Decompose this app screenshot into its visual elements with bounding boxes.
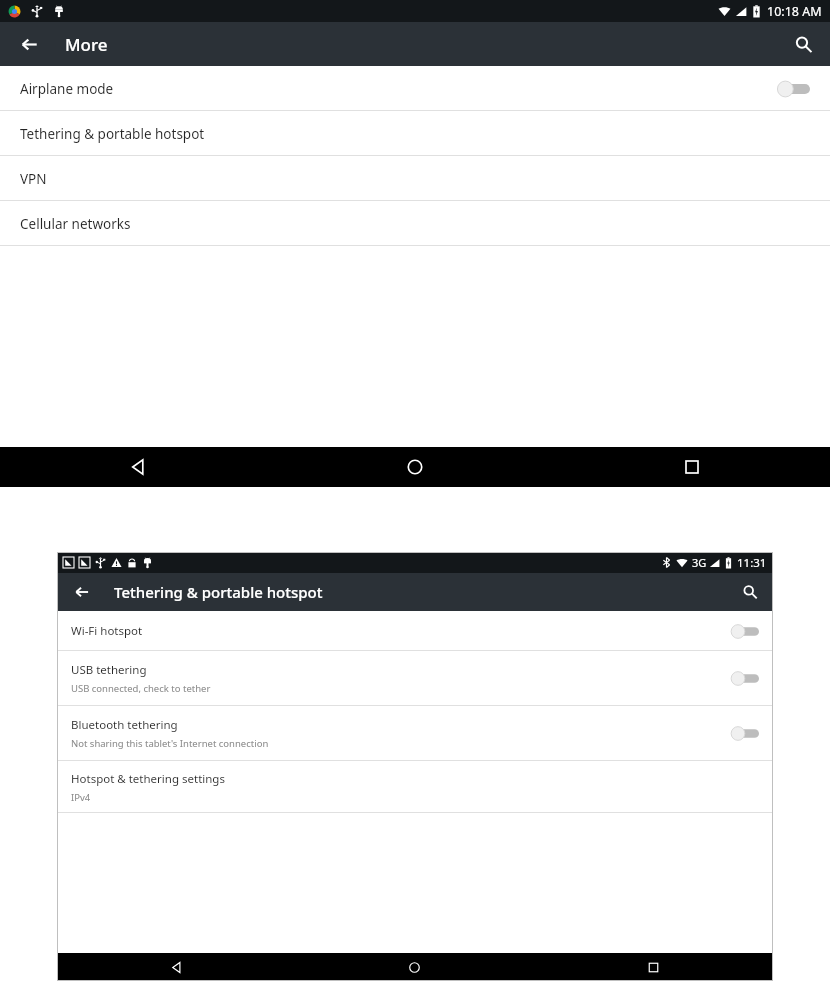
staticText: 11:31	[737, 555, 767, 571]
button[interactable]: Hotspot & tethering settings	[57, 761, 773, 813]
button[interactable]: Toggle	[730, 724, 759, 743]
button[interactable]: Cellular networks	[0, 201, 830, 246]
staticText: Tethering & portable hotspot	[20, 125, 205, 143]
button[interactable]: VPN	[0, 156, 830, 201]
staticText: Airplane mode	[20, 80, 114, 98]
staticText: VPN	[20, 170, 47, 188]
button[interactable]: Navigate up	[14, 29, 44, 59]
staticText: Hotspot & tethering settings	[71, 771, 225, 787]
staticText: Tethering & portable hotspot	[114, 582, 323, 602]
button[interactable]: Recents	[645, 959, 662, 976]
staticText: Wi-Fi hotspot	[71, 623, 143, 639]
button[interactable]: Home	[406, 959, 423, 976]
button[interactable]: Wi-Fi hotspot	[57, 611, 773, 651]
button[interactable]: Toggle	[730, 622, 759, 641]
staticText: More	[65, 33, 108, 56]
button[interactable]: Back	[126, 455, 150, 479]
staticText: 10:18 AM	[767, 3, 822, 20]
staticText: USB tethering	[71, 662, 147, 678]
button[interactable]: Search	[788, 29, 818, 59]
button[interactable]: Search	[737, 579, 763, 605]
staticText: Cellular networks	[20, 215, 131, 233]
button[interactable]: Navigate up	[69, 579, 95, 605]
button[interactable]: Tethering & portable hotspot	[0, 111, 830, 156]
button[interactable]: Toggle	[776, 78, 810, 100]
button[interactable]: Bluetooth tethering	[57, 706, 773, 761]
staticText: Not sharing this tablet's Internet conne…	[71, 737, 269, 750]
staticText: IPv4	[71, 791, 91, 804]
button[interactable]: Back	[168, 959, 185, 976]
button[interactable]: Toggle	[730, 669, 759, 688]
staticText: Bluetooth tethering	[71, 717, 178, 733]
button[interactable]: Airplane mode	[0, 66, 830, 111]
button[interactable]: USB tethering	[57, 651, 773, 706]
staticText: 3G	[692, 555, 707, 570]
button[interactable]: Home	[403, 455, 427, 479]
button[interactable]: Recents	[680, 455, 704, 479]
staticText: USB connected, check to tether	[71, 682, 211, 695]
